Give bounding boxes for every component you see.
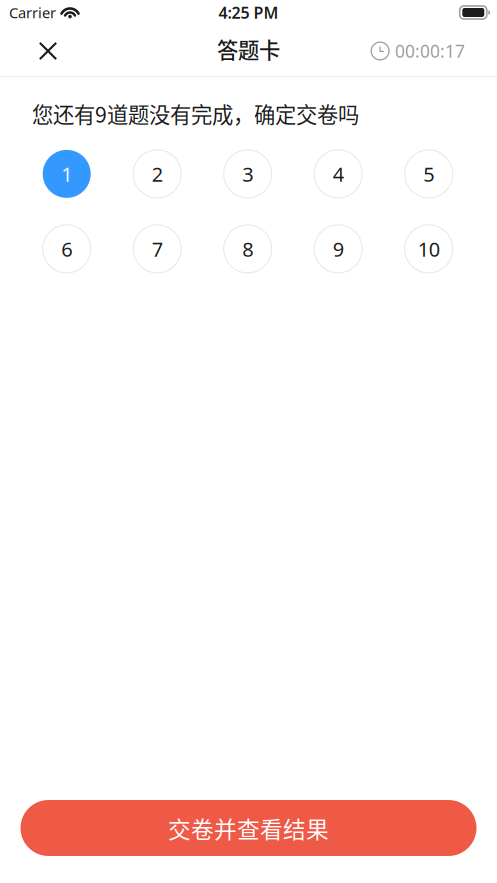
- button[interactable]: 1: [43, 150, 91, 198]
- button[interactable]: 交卷并查看结果: [20, 800, 476, 856]
- staticText: 您还有9道题没有完成，确定交卷吗: [32, 98, 359, 129]
- button[interactable]: 3: [224, 150, 272, 198]
- button[interactable]: 2: [133, 150, 181, 198]
- button[interactable]: 7: [133, 225, 181, 273]
- staticText: 3: [242, 161, 253, 187]
- staticText: 交卷并查看结果: [168, 812, 329, 844]
- staticText: 10: [418, 236, 440, 262]
- staticText: 00:00:17: [395, 39, 465, 62]
- button[interactable]: 5: [405, 150, 453, 198]
- button[interactable]: Close: [26, 29, 70, 73]
- staticText: 9: [333, 236, 344, 262]
- button[interactable]: 4: [314, 150, 362, 198]
- staticText: 6: [61, 236, 72, 262]
- button[interactable]: 10: [405, 225, 453, 273]
- staticText: 1: [61, 161, 72, 187]
- staticText: 2: [152, 161, 163, 187]
- staticText: Carrier: [9, 3, 56, 22]
- staticText: 答题卡: [217, 34, 280, 64]
- button[interactable]: 9: [314, 225, 362, 273]
- staticText: 5: [423, 161, 434, 187]
- staticText: 7: [152, 236, 163, 262]
- button[interactable]: 8: [224, 225, 272, 273]
- button[interactable]: 6: [43, 225, 91, 273]
- button[interactable]: Elapsed time 00:00:17: [371, 39, 465, 62]
- staticText: 8: [242, 236, 253, 262]
- staticText: 4: [333, 161, 344, 187]
- staticText: 4:25 PM: [218, 2, 278, 23]
